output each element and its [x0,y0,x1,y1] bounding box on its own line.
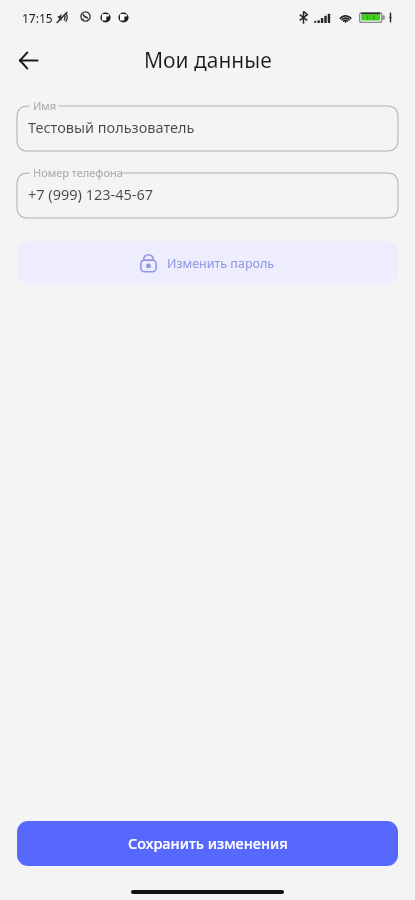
button[interactable]: +7 (999) 123-45-67 [17,173,398,218]
staticText: 17:15 [22,10,53,26]
staticText: Номер телефона [33,165,123,180]
button[interactable]: Сохранить изменения [17,821,398,866]
staticText: Сохранить изменения [128,833,288,853]
button[interactable]: Назад [7,39,49,81]
staticText: +7 (999) 123-45-67 [28,184,154,204]
staticText: Мои данные [144,46,272,75]
staticText: Тестовый пользователь [28,117,195,137]
button[interactable]: Тестовый пользователь [17,106,398,151]
staticText: Изменить пароль [167,255,275,272]
button[interactable]: Изменить пароль [17,241,398,284]
staticText: Имя [33,98,57,113]
